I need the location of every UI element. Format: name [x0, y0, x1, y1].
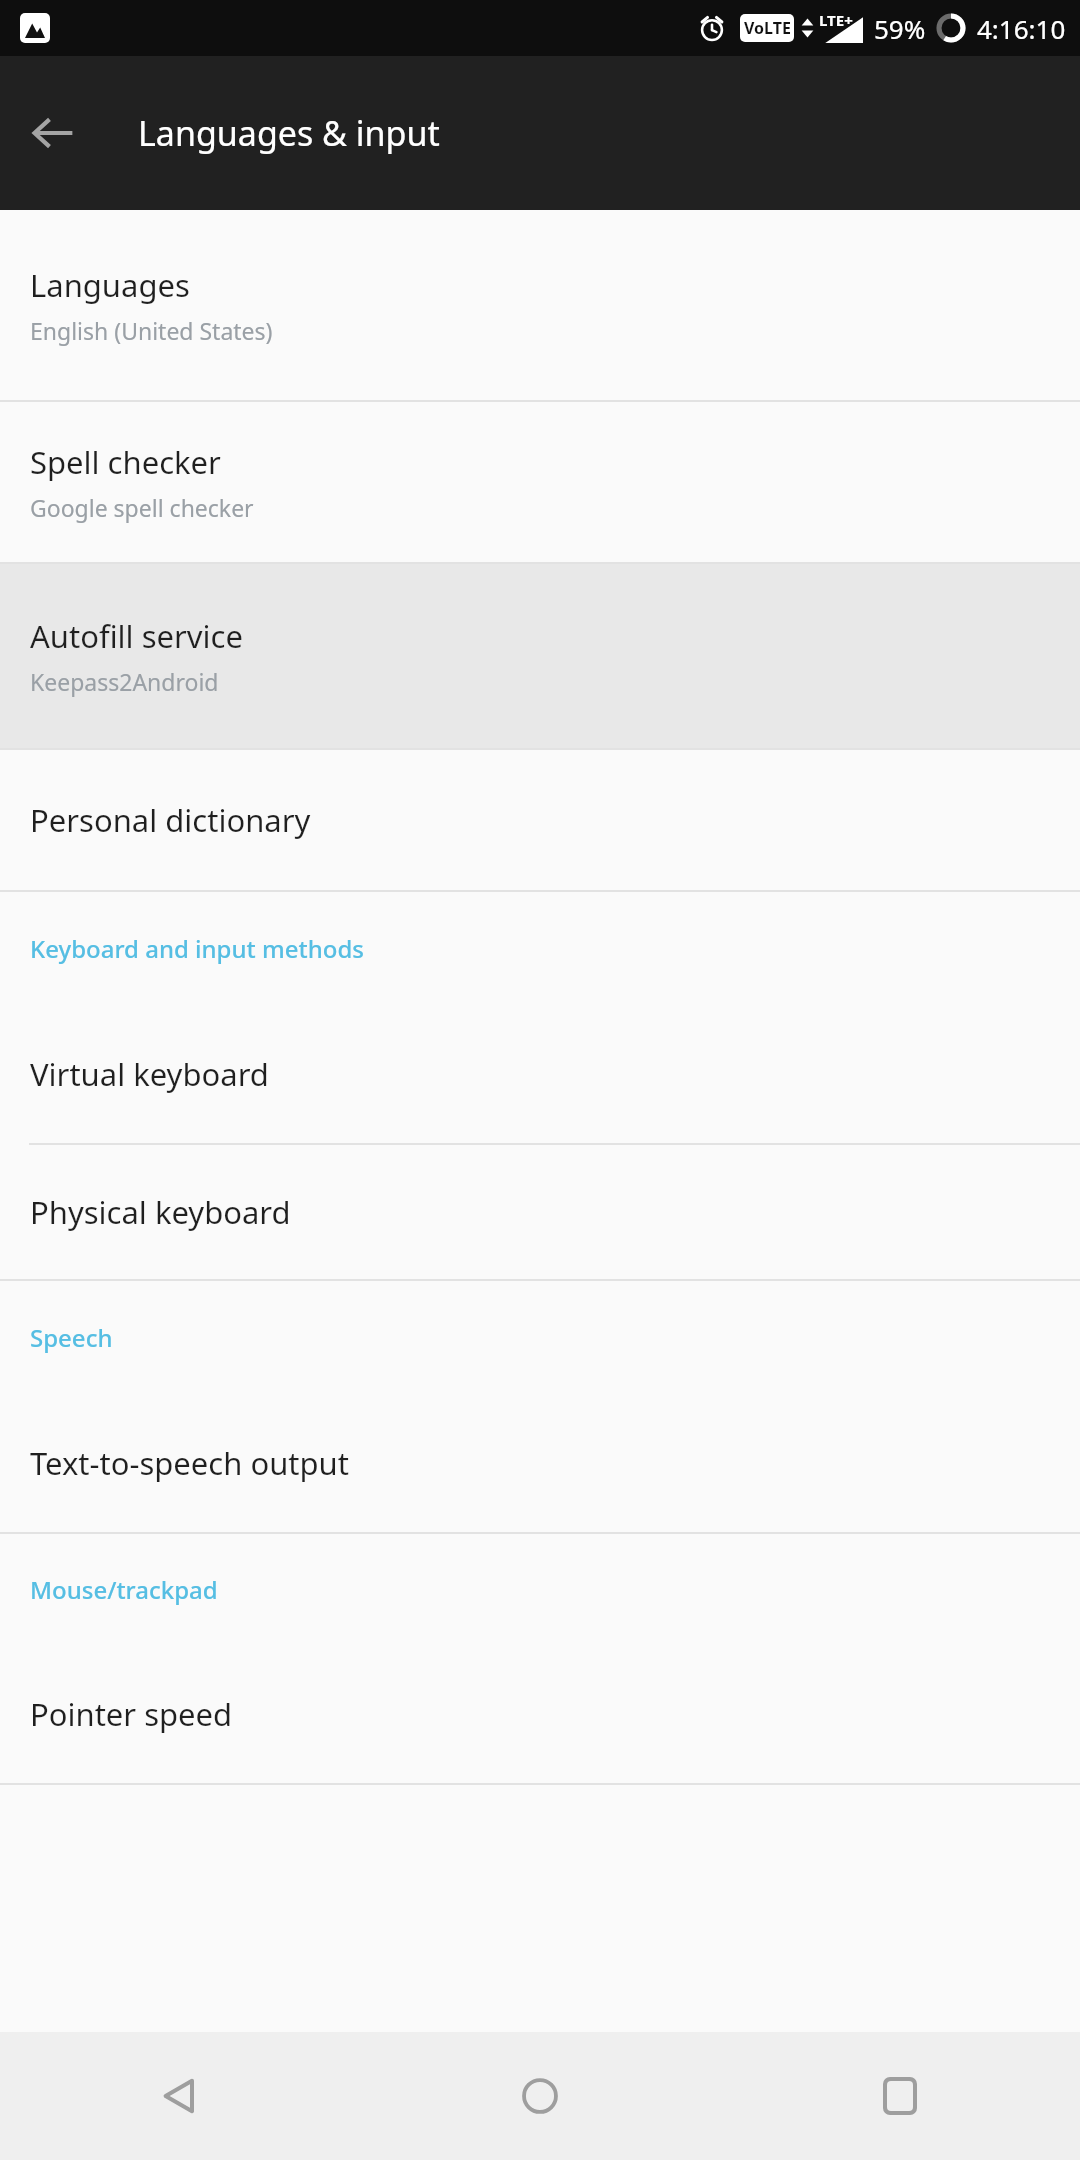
button[interactable]: Text-to-speech output: [0, 1393, 1080, 1532]
staticText: Autofill service: [30, 615, 243, 657]
staticText: Languages: [30, 264, 190, 306]
button[interactable]: Virtual keyboard: [0, 1004, 1080, 1143]
staticText: Languages & input: [138, 110, 440, 156]
staticText: Speech: [30, 1321, 113, 1354]
button[interactable]: Autofill service: [0, 564, 1080, 748]
button[interactable]: Home: [360, 2032, 720, 2160]
staticText: Text-to-speech output: [30, 1442, 349, 1484]
button[interactable]: Pointer speed: [0, 1644, 1080, 1783]
staticText: Virtual keyboard: [30, 1053, 269, 1095]
button[interactable]: Personal dictionary: [0, 750, 1080, 890]
staticText: LTE+: [819, 10, 853, 30]
staticText: Personal dictionary: [30, 799, 311, 841]
button[interactable]: Recent apps: [720, 2032, 1080, 2160]
button[interactable]: Languages: [0, 210, 1080, 400]
staticText: VoLTE: [744, 17, 791, 39]
staticText: Pointer speed: [30, 1693, 233, 1735]
staticText: 4:16:10: [977, 11, 1066, 46]
button[interactable]: Back: [14, 94, 92, 172]
staticText: Spell checker: [30, 441, 221, 483]
button[interactable]: Back: [0, 2032, 360, 2160]
staticText: English (United States): [30, 315, 273, 346]
button[interactable]: Physical keyboard: [0, 1145, 1080, 1279]
staticText: Mouse/trackpad: [30, 1573, 218, 1606]
staticText: Google spell checker: [30, 492, 254, 523]
button[interactable]: Spell checker: [0, 402, 1080, 562]
staticText: Physical keyboard: [30, 1191, 291, 1233]
staticText: 59%: [874, 11, 926, 46]
staticText: Keepass2Android: [30, 666, 219, 697]
staticText: Keyboard and input methods: [30, 932, 364, 965]
